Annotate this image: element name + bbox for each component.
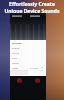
button[interactable]: Record: [35, 78, 40, 83]
button[interactable]: Settings: [12, 40, 28, 45]
button[interactable]: Pitch: [12, 55, 28, 60]
button[interactable]: Engine: [12, 45, 28, 50]
staticText: Decay: [12, 61, 19, 64]
staticText: CANCEL: [30, 67, 39, 70]
staticText: Effortlessly Create: [0, 1, 64, 8]
staticText: Pitch: [12, 56, 18, 59]
staticText: Settings: [12, 41, 22, 44]
staticText: Unique Device Sounds: [0, 8, 64, 15]
button[interactable]: Decay: [12, 60, 28, 65]
staticText: OK: [41, 66, 44, 71]
staticText: Engine: [12, 46, 20, 49]
button[interactable]: Attack: [12, 50, 28, 55]
button[interactable]: Reset: [12, 65, 28, 70]
staticText: Reset: [12, 66, 19, 69]
staticText: Attack: [12, 51, 20, 54]
button[interactable]: Record: [17, 78, 22, 83]
